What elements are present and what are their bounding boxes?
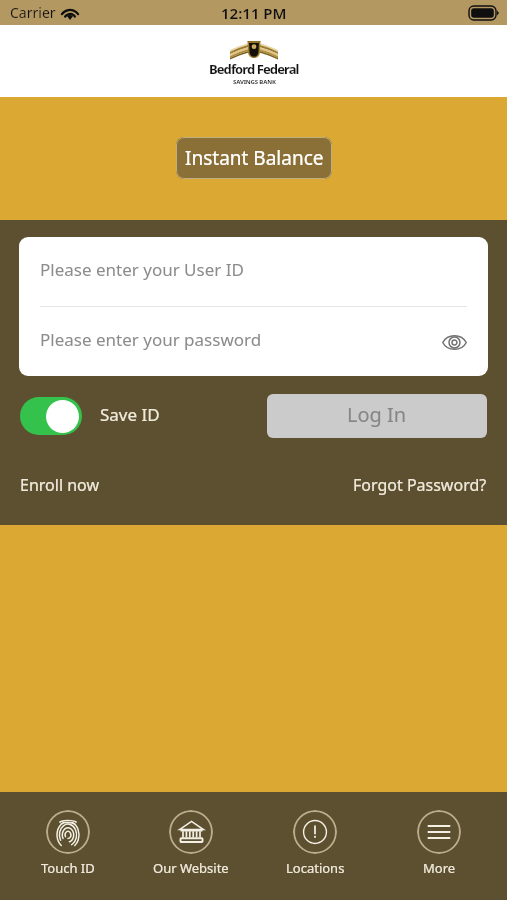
staticText: SAVINGS BANK [233, 78, 276, 86]
staticText: Save ID [100, 403, 160, 426]
button[interactable]: Instant Balance [176, 137, 332, 179]
button[interactable]: Forgot Password? [353, 474, 487, 496]
staticText: Our Website [153, 859, 229, 877]
staticText: Enroll now [20, 474, 99, 496]
staticText: 12:11 PM [221, 3, 287, 23]
button[interactable]: Log In [267, 394, 487, 438]
staticText: Carrier [10, 3, 56, 22]
button[interactable]: More [377, 792, 501, 900]
button[interactable]: Locations [253, 792, 377, 900]
staticText: Instant Balance [185, 145, 324, 171]
staticText: Please enter your password [40, 328, 262, 351]
button[interactable]: Touch ID [6, 792, 129, 900]
staticText: Forgot Password? [353, 474, 487, 496]
staticText: Log In [347, 401, 407, 428]
button[interactable] [20, 397, 82, 435]
button[interactable]: Our Website [129, 792, 253, 900]
staticText: Touch ID [41, 859, 95, 877]
button[interactable]: Enroll now [20, 474, 99, 496]
button[interactable]: Please enter your password [19, 307, 488, 376]
staticText: Locations [286, 859, 345, 877]
button[interactable]: Please enter your User ID [19, 237, 488, 306]
staticText: More [423, 859, 456, 877]
staticText: Please enter your User ID [40, 258, 244, 281]
staticText: Bedford Federal [209, 60, 299, 78]
button[interactable]: Show password [441, 329, 467, 355]
